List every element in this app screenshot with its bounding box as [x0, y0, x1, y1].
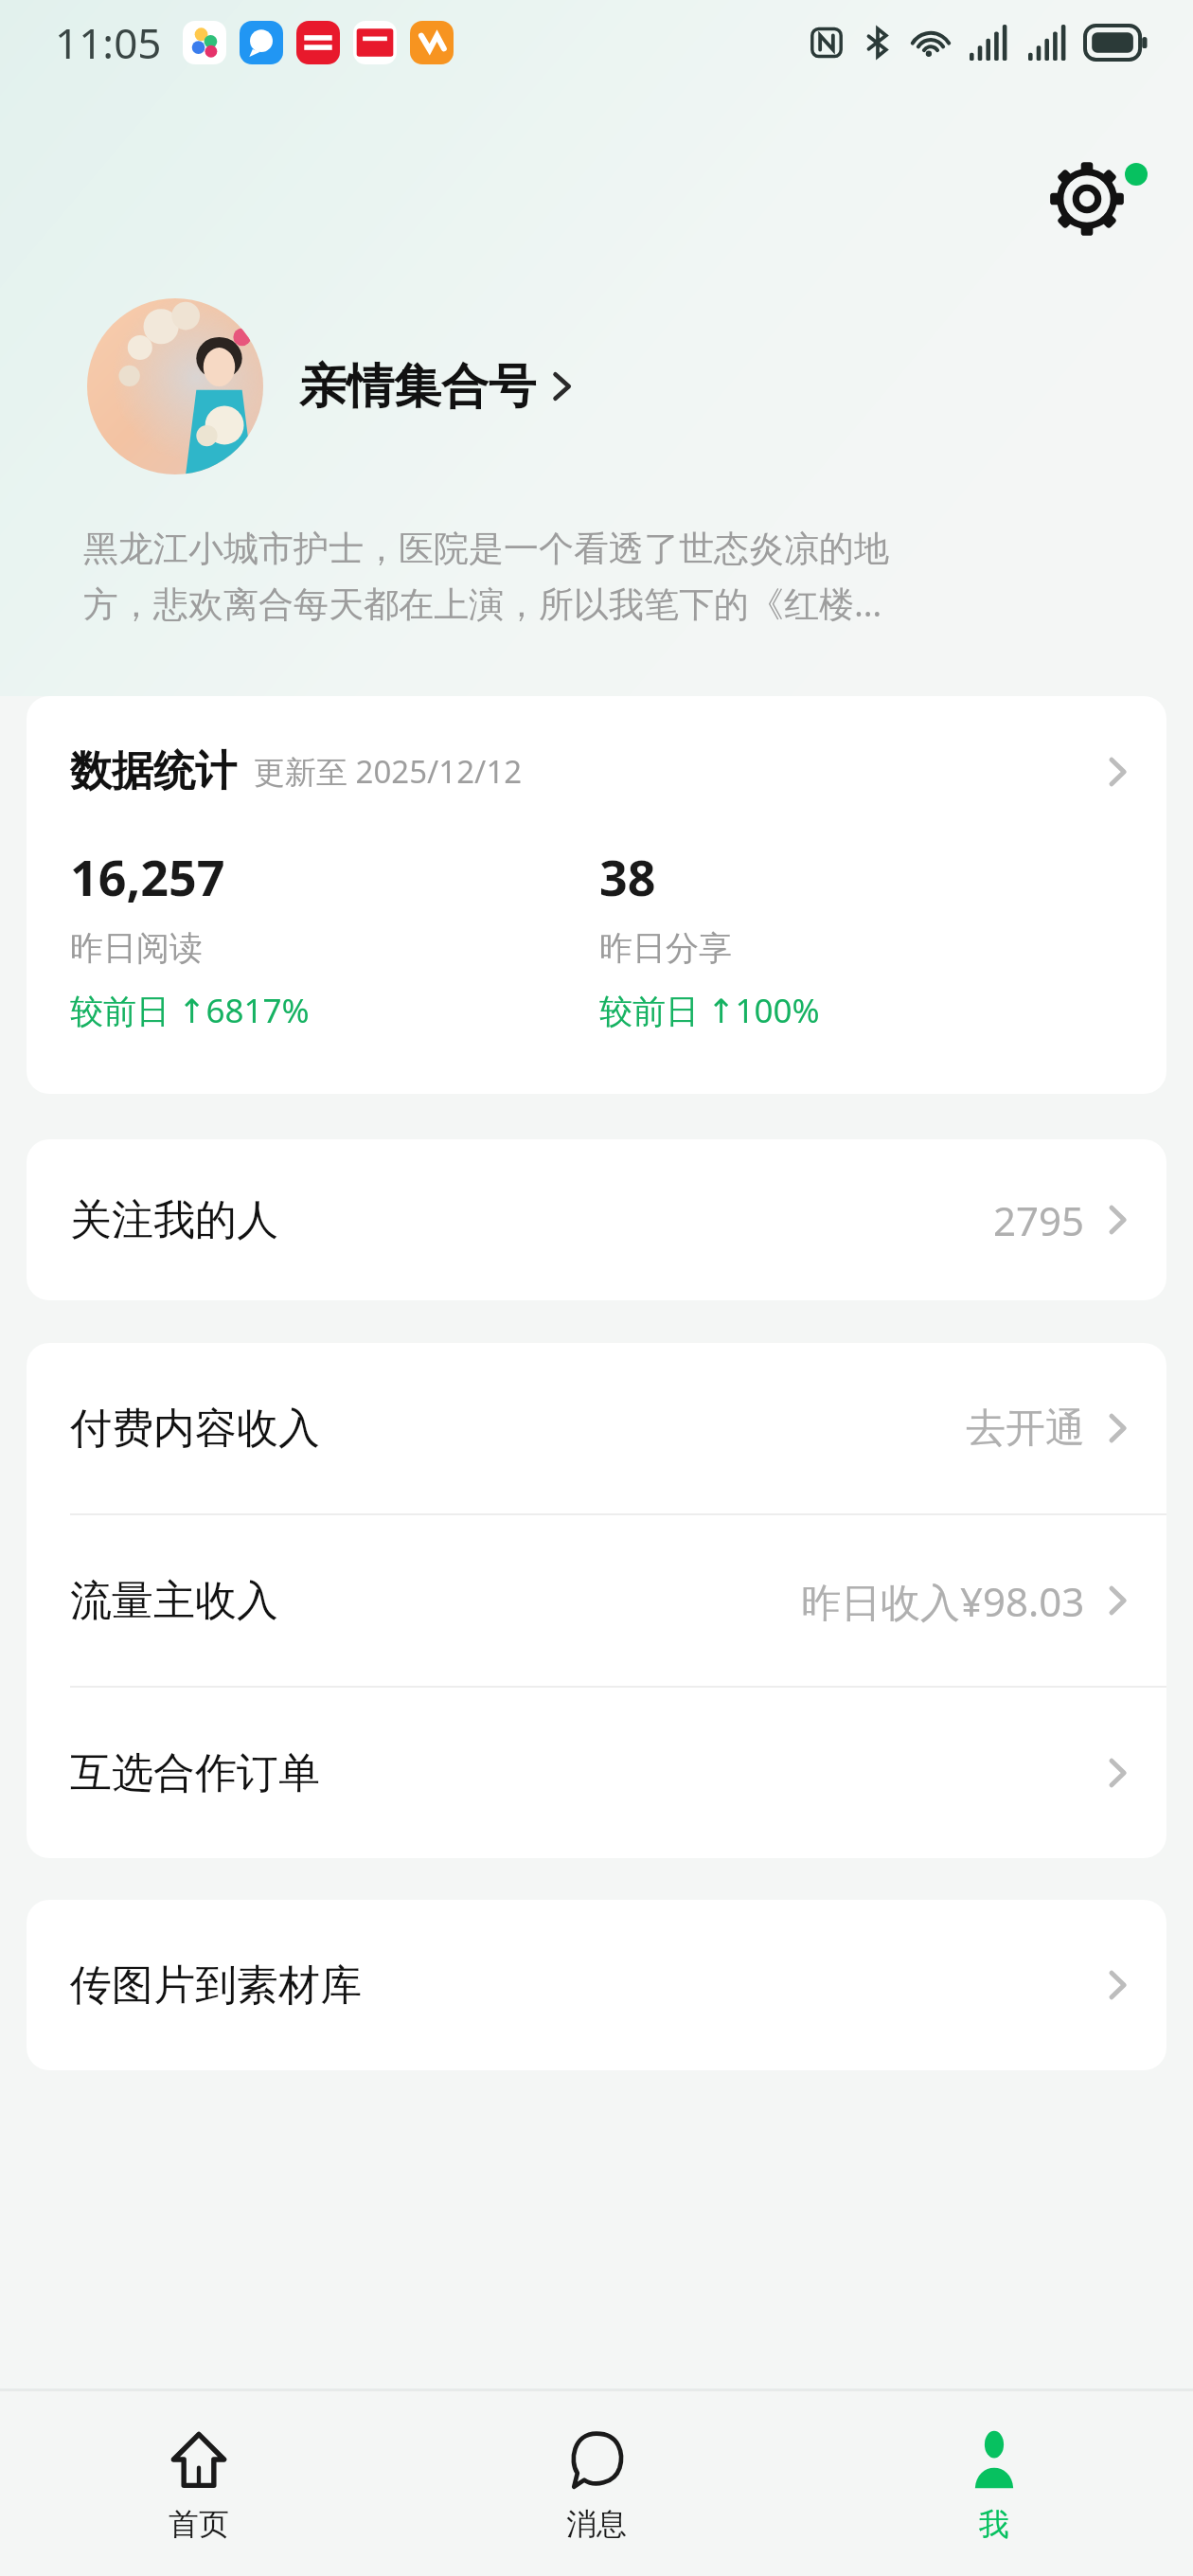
button[interactable]: 付费内容收入 [27, 1343, 1166, 1513]
staticText: 亲情集合号 [299, 357, 536, 417]
staticText: 昨日分享 [599, 927, 732, 969]
staticText: 数据统计 [70, 745, 237, 797]
staticText: 付费内容收入 [70, 1403, 320, 1455]
staticText: 我 [979, 2505, 1009, 2543]
button[interactable]: 我 [795, 2391, 1193, 2576]
button[interactable]: 首页 [0, 2391, 398, 2576]
staticText: 2795 [993, 1193, 1085, 1247]
staticText: 消息 [566, 2505, 627, 2543]
staticText: 关注我的人 [70, 1194, 278, 1246]
staticText: 首页 [169, 2505, 229, 2543]
button[interactable]: 互选合作订单 [27, 1688, 1166, 1858]
button[interactable]: 亲情集合号 [87, 298, 574, 474]
staticText: 更新至 2025/12/12 [254, 750, 523, 793]
staticText: 较前日 ↑6817% [70, 988, 310, 1033]
button[interactable]: 数据统计 [27, 696, 1166, 1094]
button[interactable]: 消息 [398, 2391, 795, 2576]
staticText: 较前日 ↑100% [599, 988, 820, 1033]
button[interactable]: Settings [1047, 159, 1127, 239]
button[interactable]: 传图片到素材库 [27, 1900, 1166, 2070]
staticText: 去开通 [966, 1404, 1085, 1454]
button[interactable]: 流量主收入 [27, 1515, 1166, 1686]
staticText: 昨日阅读 [70, 927, 203, 969]
staticText: 流量主收入 [70, 1575, 278, 1627]
staticText: 16,257 [70, 843, 225, 910]
staticText: 传图片到素材库 [70, 1959, 362, 2012]
staticText: 11:05 [55, 14, 162, 71]
staticText: 昨日收入¥98.03 [801, 1574, 1085, 1628]
staticText: 黑龙江小城市护士，医院是一个看透了世态炎凉的地 方，悲欢离合每天都在上演，所以我… [83, 527, 889, 627]
staticText: 互选合作订单 [70, 1747, 320, 1799]
staticText: 38 [599, 843, 656, 910]
button[interactable]: 关注我的人 [27, 1139, 1166, 1300]
